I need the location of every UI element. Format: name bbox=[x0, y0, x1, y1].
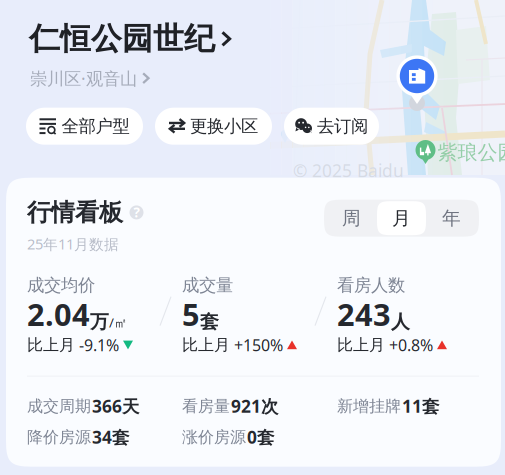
staticText: -9.1% bbox=[79, 334, 119, 356]
button[interactable]: 月 bbox=[377, 201, 426, 235]
button[interactable]: 仁恒公园世纪 bbox=[0, 20, 231, 58]
staticText: 月 bbox=[392, 207, 411, 230]
button[interactable]: 年 bbox=[426, 200, 477, 237]
button[interactable]: 去订阅 bbox=[284, 108, 379, 145]
button[interactable]: 更换小区 bbox=[155, 108, 272, 145]
staticText: +0.8% bbox=[389, 334, 433, 356]
staticText: 仁恒公园世纪 bbox=[29, 20, 215, 58]
staticText: 去订阅 bbox=[317, 115, 368, 137]
staticText: 看房量 bbox=[182, 396, 230, 416]
staticText: 涨价房源 bbox=[182, 427, 246, 447]
button[interactable]: 全部户型 bbox=[26, 108, 143, 145]
staticText: 比上月 bbox=[27, 335, 75, 355]
staticText: 366天 bbox=[92, 395, 139, 418]
staticText: 243 bbox=[337, 294, 391, 334]
staticText: 周 bbox=[342, 207, 361, 230]
staticText: 比上月 bbox=[182, 335, 230, 355]
staticText: 紫琅公园 bbox=[437, 140, 505, 165]
staticText: 看房人数 bbox=[337, 275, 405, 296]
button[interactable]: 周 bbox=[326, 200, 377, 237]
button[interactable]: 崇川区·观音山 bbox=[0, 67, 149, 90]
staticText: 套 bbox=[200, 310, 219, 333]
staticText: © 2025 Baidu bbox=[293, 159, 404, 182]
staticText: 0套 bbox=[247, 426, 274, 449]
staticText: 34套 bbox=[92, 426, 129, 449]
staticText: /㎡ bbox=[109, 314, 127, 331]
staticText: 新增挂牌 bbox=[337, 396, 401, 416]
staticText: 人 bbox=[391, 310, 410, 333]
staticText: 成交量 bbox=[182, 275, 233, 296]
staticText: ? bbox=[133, 204, 139, 221]
staticText: 2.04 bbox=[27, 294, 90, 334]
staticText: 全部户型 bbox=[61, 115, 129, 137]
staticText: 崇川区·观音山 bbox=[30, 67, 137, 90]
staticText: 11套 bbox=[402, 395, 439, 418]
staticText: 25年11月数据 bbox=[27, 234, 119, 254]
staticText: 921次 bbox=[231, 395, 278, 418]
staticText: 5 bbox=[182, 294, 200, 334]
staticText: 行情看板 bbox=[27, 198, 123, 227]
staticText: 万 bbox=[90, 310, 109, 333]
staticText: 更换小区 bbox=[190, 115, 258, 137]
staticText: +150% bbox=[234, 334, 283, 356]
staticText: 降价房源 bbox=[27, 427, 91, 447]
staticText: 成交均价 bbox=[27, 275, 95, 296]
staticText: 成交周期 bbox=[27, 396, 91, 416]
staticText: 年 bbox=[442, 207, 461, 230]
button[interactable]: 说明 bbox=[129, 205, 144, 220]
staticText: 比上月 bbox=[337, 335, 385, 355]
